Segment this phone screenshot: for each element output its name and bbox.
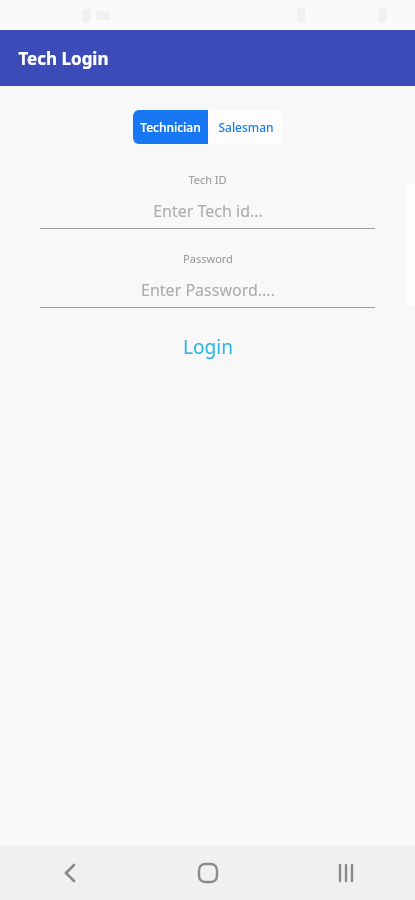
staticText: Tech Login [18,47,109,70]
button[interactable]: Salesman [208,110,283,144]
button[interactable]: Back [0,846,139,900]
staticText: Enter Tech id... [153,200,263,222]
staticText: Technician [140,119,201,135]
button[interactable]: Login [165,328,251,366]
button[interactable]: Enter Tech id... [40,200,375,222]
button[interactable]: Enter Password.... [40,279,375,301]
button[interactable]: Recents [277,846,415,900]
button[interactable]: Technician [133,110,208,144]
staticText: Login [183,334,233,360]
button[interactable]: Home [139,846,277,900]
staticText: Enter Password.... [141,279,275,301]
staticText: Password [183,251,233,266]
staticText: Salesman [218,119,274,135]
staticText: Tech ID [188,172,227,187]
